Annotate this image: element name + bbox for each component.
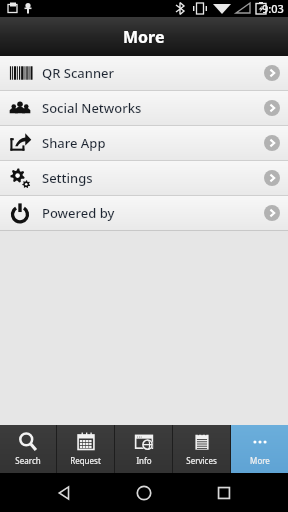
button[interactable]: Info — [115, 425, 172, 473]
button[interactable]: Home — [129, 478, 159, 508]
staticText: Search — [15, 455, 41, 466]
staticText: Share App — [42, 134, 106, 152]
button[interactable]: Social Networks — [0, 91, 288, 125]
button[interactable]: Services — [173, 425, 230, 473]
staticText: More — [250, 455, 270, 466]
button[interactable]: More — [231, 425, 288, 473]
button[interactable]: Powered by — [0, 196, 288, 230]
staticText: Info — [136, 455, 152, 466]
button[interactable]: Share App — [0, 126, 288, 160]
staticText: Services — [186, 455, 217, 466]
button[interactable]: Settings — [0, 161, 288, 195]
staticText: More — [123, 26, 165, 48]
button[interactable]: Search — [0, 425, 56, 473]
button[interactable]: QR Scanner — [0, 56, 288, 90]
staticText: QR Scanner — [42, 64, 115, 82]
button[interactable]: Request — [57, 425, 114, 473]
button[interactable]: Back — [50, 478, 80, 508]
staticText: Settings — [42, 169, 93, 187]
staticText: Social Networks — [42, 99, 142, 117]
staticText: Request — [70, 455, 101, 466]
staticText: Powered by — [42, 204, 115, 222]
button[interactable]: Recents — [209, 478, 239, 508]
staticText: 9:03 — [262, 1, 284, 16]
